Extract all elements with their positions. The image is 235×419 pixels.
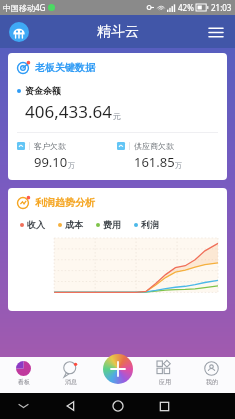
button[interactable]: 消息 xyxy=(47,357,94,393)
staticText: 161.85 xyxy=(134,153,175,171)
staticText: 中国移动4G xyxy=(3,2,46,13)
staticText: 看板 xyxy=(18,378,30,386)
staticText: 客户欠款 xyxy=(34,141,66,151)
staticText: 利润 xyxy=(141,219,159,230)
staticText: 万 xyxy=(68,161,75,170)
button[interactable]: 我的 xyxy=(188,357,235,393)
button[interactable]: 供应商欠款 xyxy=(117,141,218,171)
button[interactable]: Recents xyxy=(141,393,188,419)
staticText: 42% xyxy=(178,2,194,13)
button[interactable]: 应用 xyxy=(141,357,188,393)
staticText: 资金余额 xyxy=(25,85,61,96)
staticText: 成本 xyxy=(65,219,83,230)
button[interactable]: 客户欠款 xyxy=(17,141,117,171)
staticText: 我的 xyxy=(206,378,218,386)
staticText: 老板关键数据 xyxy=(35,61,95,74)
button[interactable]: 看板 xyxy=(0,357,47,393)
staticText: 元 xyxy=(113,111,121,121)
staticText: 消息 xyxy=(65,378,77,386)
button[interactable]: Home xyxy=(94,393,141,419)
button[interactable]: Menu xyxy=(205,21,227,43)
button[interactable]: Add xyxy=(103,354,133,384)
staticText: 应用 xyxy=(159,378,171,386)
button[interactable]: Back xyxy=(47,393,94,419)
button[interactable]: 老板关键数据 xyxy=(8,53,227,180)
staticText: 406,433.64 xyxy=(25,100,112,123)
staticText: 供应商欠款 xyxy=(134,141,174,151)
staticText: 精斗云 xyxy=(97,23,139,41)
staticText: 万 xyxy=(175,161,182,170)
staticText: 99.10 xyxy=(34,153,68,171)
staticText: 费用 xyxy=(103,219,121,230)
staticText: 利润趋势分析 xyxy=(35,196,95,209)
staticText: 收入 xyxy=(27,219,45,230)
button[interactable]: 利润趋势分析 xyxy=(8,188,227,311)
button[interactable]: Logo xyxy=(9,22,29,42)
staticText: 21:03 xyxy=(211,2,232,13)
